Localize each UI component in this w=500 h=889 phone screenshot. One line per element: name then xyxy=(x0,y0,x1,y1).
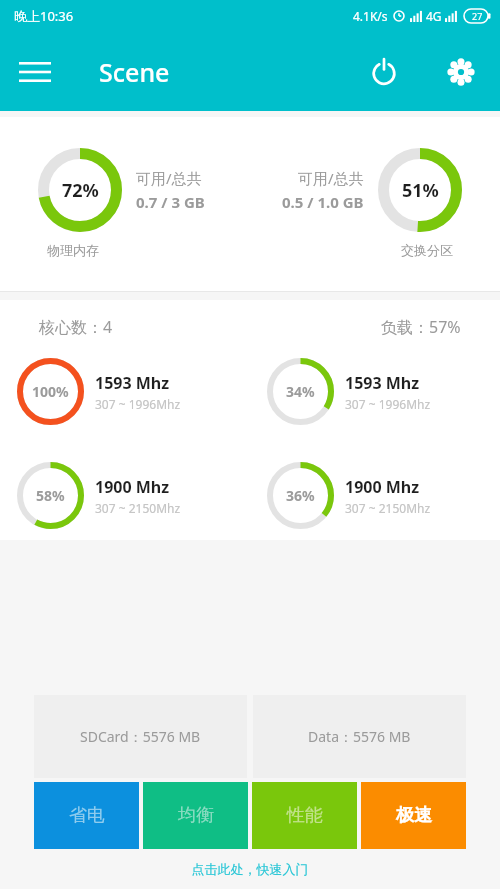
staticText: 307 ~ 1996Mhz xyxy=(95,396,181,412)
staticText: 1593 Mhz xyxy=(345,372,420,394)
button[interactable]: 36% xyxy=(250,462,500,529)
staticText: 307 ~ 2150Mhz xyxy=(345,500,431,516)
button[interactable]: SDCard：5576 MB xyxy=(34,695,247,778)
staticText: 1593 Mhz xyxy=(95,372,170,394)
staticText: 27 xyxy=(472,10,483,22)
staticText: 均衡 xyxy=(178,804,214,827)
staticText: 100% xyxy=(32,382,69,401)
button[interactable]: Settings xyxy=(439,50,483,94)
button[interactable]: 均衡 xyxy=(143,782,248,849)
staticText: Scene xyxy=(99,55,170,89)
staticText: 36% xyxy=(286,486,315,505)
staticText: 34% xyxy=(286,382,315,401)
staticText: 1900 Mhz xyxy=(345,476,420,498)
staticText: 4.1K/s xyxy=(353,8,388,24)
staticText: 4G xyxy=(426,8,442,24)
staticText: Data：5576 MB xyxy=(308,727,411,746)
staticText: 交换分区 xyxy=(401,242,453,258)
button[interactable]: 100% xyxy=(0,358,250,425)
staticText: 307 ~ 2150Mhz xyxy=(95,500,181,516)
button[interactable]: 58% xyxy=(0,462,250,529)
staticText: 核心数：4 xyxy=(39,316,113,338)
staticText: 可用/总共 xyxy=(298,168,364,188)
button[interactable]: 34% xyxy=(250,358,500,425)
staticText: 可用/总共 xyxy=(136,168,202,188)
button[interactable]: Data：5576 MB xyxy=(253,695,466,778)
staticText: SDCard：5576 MB xyxy=(80,727,201,746)
staticText: 负载：57% xyxy=(381,316,461,338)
staticText: 58% xyxy=(36,486,65,505)
button[interactable]: Power xyxy=(362,50,406,94)
staticText: 51% xyxy=(402,178,439,203)
staticText: 晚上10:36 xyxy=(14,7,74,25)
button[interactable]: 72% xyxy=(0,117,250,292)
staticText: 性能 xyxy=(287,804,323,827)
button[interactable]: 可用/总共 xyxy=(250,117,500,292)
staticText: 307 ~ 1996Mhz xyxy=(345,396,431,412)
staticText: 0.7 / 3 GB xyxy=(136,192,205,212)
button[interactable]: 性能 xyxy=(252,782,357,849)
button[interactable]: 极速 xyxy=(361,782,466,849)
staticText: 0.5 / 1.0 GB xyxy=(282,192,364,212)
staticText: 省电 xyxy=(69,804,105,827)
staticText: 物理内存 xyxy=(47,242,99,258)
button[interactable]: 点击此处，快速入门 xyxy=(0,861,500,877)
button[interactable]: 省电 xyxy=(34,782,139,849)
button[interactable]: Menu xyxy=(13,50,57,94)
staticText: 1900 Mhz xyxy=(95,476,170,498)
staticText: 72% xyxy=(62,178,99,203)
staticText: 极速 xyxy=(396,804,432,827)
